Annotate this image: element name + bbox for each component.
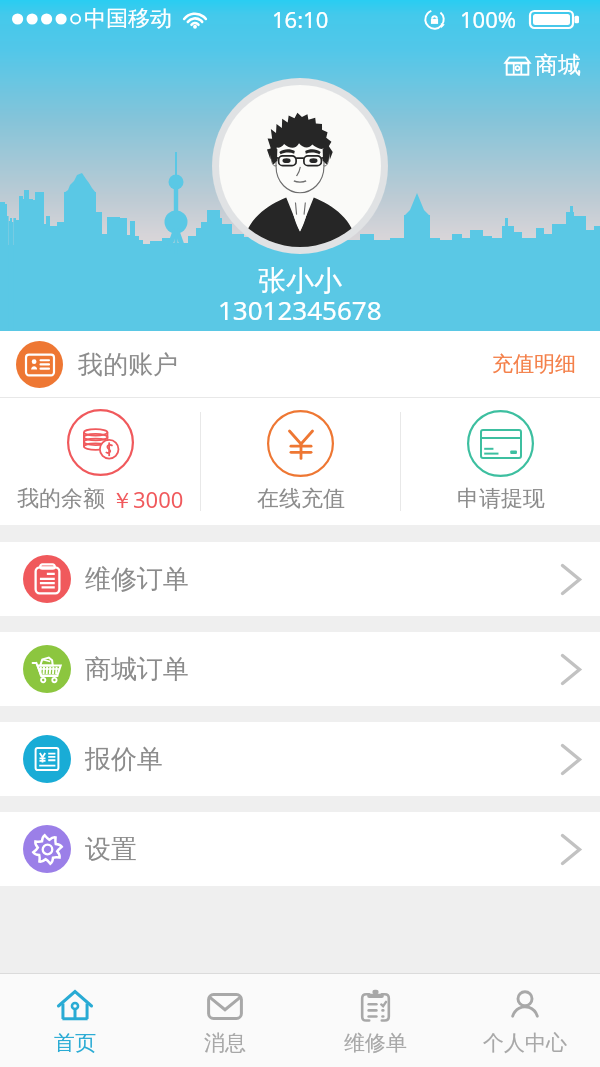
staticText: 充值明细: [492, 351, 576, 377]
button[interactable]: 个人中心: [450, 974, 600, 1067]
button[interactable]: 维修订单: [0, 542, 600, 616]
staticText: 个人中心: [483, 1030, 567, 1056]
staticText: 首页: [54, 1030, 96, 1056]
button[interactable]: 报价单: [0, 722, 600, 796]
button[interactable]: 我的余额: [0, 398, 200, 525]
staticText: 报价单: [85, 743, 163, 776]
button[interactable]: 维修单: [300, 974, 450, 1067]
button[interactable]: 首页: [0, 974, 150, 1067]
staticText: 设置: [85, 833, 137, 866]
staticText: 维修订单: [85, 563, 189, 596]
staticText: 在线充值: [257, 485, 345, 513]
button[interactable]: 商城订单: [0, 632, 600, 706]
staticText: 消息: [204, 1030, 246, 1056]
button[interactable]: 申请提现: [401, 398, 600, 525]
staticText: 13012345678: [218, 292, 382, 325]
button[interactable]: 在线充值: [201, 398, 400, 525]
staticText: 张小小: [258, 263, 342, 298]
staticText: 我的账户: [78, 349, 178, 380]
staticText: 申请提现: [457, 485, 545, 513]
button[interactable]: 我的账户: [0, 331, 600, 397]
staticText: 16:10: [272, 4, 329, 34]
staticText: ￥3000: [111, 484, 184, 514]
staticText: 维修单: [344, 1030, 407, 1056]
button[interactable]: 设置: [0, 812, 600, 886]
button[interactable]: 商城: [494, 38, 600, 84]
staticText: 中国移动: [84, 5, 172, 33]
staticText: 商城: [535, 51, 581, 80]
button[interactable]: 消息: [150, 974, 300, 1067]
button[interactable]: 充值明细: [488, 347, 580, 381]
staticText: 商城订单: [85, 653, 189, 686]
button[interactable]: Avatar: [212, 78, 388, 254]
staticText: 100%: [460, 4, 517, 34]
staticText: 我的余额: [17, 485, 105, 513]
